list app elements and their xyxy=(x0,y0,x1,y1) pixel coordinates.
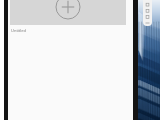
staticText: Untitled xyxy=(11,28,27,33)
button[interactable]: Untitled xyxy=(11,28,27,33)
button[interactable]: Add photo xyxy=(10,0,126,25)
button[interactable]: Editing tools xyxy=(143,0,152,26)
